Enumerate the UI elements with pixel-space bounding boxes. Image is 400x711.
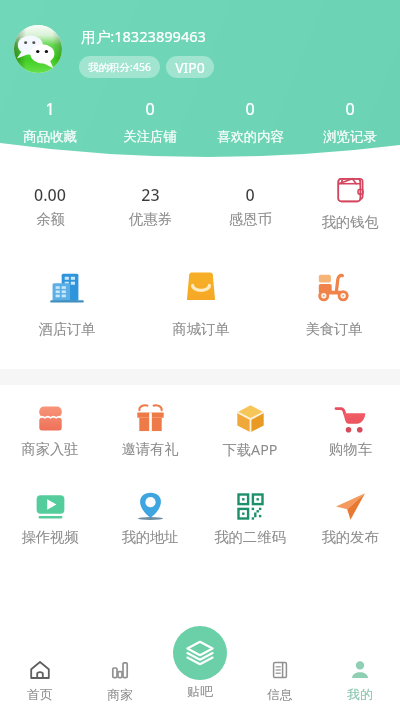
button[interactable]: 信息: [240, 642, 320, 711]
button[interactable]: 0: [100, 98, 200, 145]
staticText: 0: [245, 98, 255, 120]
staticText: 我的: [347, 687, 373, 703]
staticText: 邀请有礼: [121, 440, 179, 458]
staticText: 我的发布: [321, 528, 379, 546]
button[interactable]: 首页: [0, 642, 80, 711]
button[interactable]: 0: [300, 98, 400, 145]
button[interactable]: 用户头像: [14, 25, 62, 73]
button[interactable]: 商家: [80, 642, 160, 711]
button[interactable]: 商家入驻: [0, 402, 100, 458]
staticText: 浏览记录: [323, 128, 377, 145]
staticText: 美食订单: [305, 320, 363, 338]
staticText: 23: [141, 184, 160, 206]
button[interactable]: 下载APP: [200, 402, 300, 460]
staticText: 我的钱包: [321, 213, 379, 231]
staticText: 首页: [27, 687, 53, 703]
button[interactable]: 23: [100, 180, 200, 228]
button[interactable]: 我的: [320, 642, 400, 711]
staticText: 购物车: [329, 440, 372, 458]
staticText: 感恩币: [229, 210, 272, 228]
staticText: 0: [245, 184, 255, 206]
staticText: 下载APP: [222, 440, 278, 460]
button[interactable]: 美食订单: [267, 268, 400, 338]
button[interactable]: 购物车: [300, 402, 400, 458]
staticText: 喜欢的内容: [217, 128, 284, 145]
staticText: 商家入驻: [21, 440, 79, 458]
button[interactable]: 1: [0, 98, 100, 145]
button[interactable]: 我的积分:456: [79, 56, 160, 78]
button[interactable]: 我的钱包: [300, 180, 400, 231]
staticText: VIP0: [175, 58, 205, 77]
staticText: 信息: [267, 687, 293, 703]
button[interactable]: 操作视频: [0, 490, 100, 546]
staticText: 我的积分:456: [88, 60, 151, 74]
button[interactable]: 0.00: [0, 180, 100, 228]
staticText: 酒店订单: [38, 320, 96, 338]
staticText: 商城订单: [172, 320, 230, 338]
staticText: 1: [45, 98, 55, 120]
staticText: 用户:18323899463: [81, 26, 206, 46]
staticText: 关注店铺: [123, 128, 177, 145]
staticText: 0: [145, 98, 155, 120]
staticText: 商家: [107, 687, 133, 703]
button[interactable]: 0: [200, 180, 300, 228]
staticText: 余额: [36, 210, 65, 228]
button[interactable]: 我的地址: [100, 490, 200, 546]
staticText: 0: [345, 98, 355, 120]
staticText: 我的地址: [121, 528, 179, 546]
button[interactable]: 我的二维码: [200, 490, 300, 546]
button[interactable]: 邀请有礼: [100, 402, 200, 458]
button[interactable]: 我的发布: [300, 490, 400, 546]
button[interactable]: 贴吧: [173, 626, 227, 680]
button[interactable]: 0: [200, 98, 300, 145]
staticText: 优惠券: [129, 210, 172, 228]
staticText: 我的二维码: [214, 528, 286, 546]
button[interactable]: 商城订单: [134, 268, 267, 338]
staticText: 商品收藏: [23, 128, 77, 145]
button[interactable]: 酒店订单: [0, 268, 134, 338]
staticText: 0.00: [34, 184, 66, 206]
button[interactable]: VIP0: [166, 56, 214, 78]
staticText: 操作视频: [21, 528, 79, 546]
staticText: 贴吧: [187, 684, 213, 700]
